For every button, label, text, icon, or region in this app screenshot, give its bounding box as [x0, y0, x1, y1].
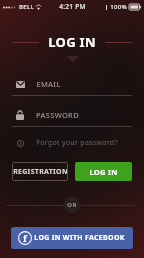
staticText: 4:21 PM [59, 2, 86, 11]
staticText: REGISTRATION [13, 167, 68, 177]
other: Email [16, 81, 25, 88]
staticText: 100% [110, 3, 127, 11]
staticText: LOG IN WITH FACEBOOK [34, 233, 125, 243]
button[interactable]: f [11, 227, 133, 249]
button[interactable]: Forgot your password? [12, 136, 132, 150]
button[interactable]: Password [12, 104, 132, 127]
button[interactable]: LOG IN [75, 162, 132, 181]
staticText: OR [67, 201, 77, 209]
staticText: Forgot your password? [36, 138, 118, 148]
other: Password [16, 110, 24, 120]
staticText: LOG IN [48, 33, 96, 51]
staticText: PASSWORD [36, 110, 79, 120]
button[interactable]: Email [12, 73, 132, 96]
staticText: BELL [19, 3, 34, 11]
staticText: LOG IN [89, 167, 118, 177]
button[interactable]: REGISTRATION [12, 162, 68, 181]
staticText: EMAIL [36, 79, 61, 89]
staticText: f [23, 232, 27, 244]
